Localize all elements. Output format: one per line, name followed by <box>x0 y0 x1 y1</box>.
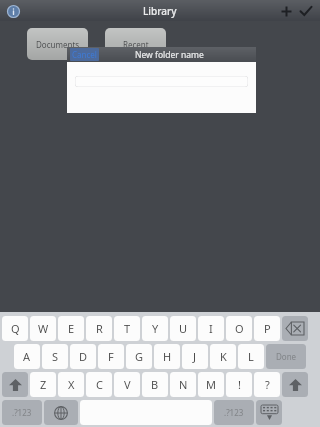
staticText: X <box>68 377 75 392</box>
button[interactable]: G <box>126 344 152 369</box>
staticText: New folder name <box>135 49 204 61</box>
button[interactable]: O <box>226 316 252 341</box>
staticText: S <box>52 349 59 364</box>
staticText: R <box>96 321 103 336</box>
button[interactable]: L <box>238 344 264 369</box>
staticText: W <box>38 321 49 336</box>
button[interactable]: Z <box>30 372 56 397</box>
button[interactable] <box>75 76 248 87</box>
button[interactable]: F <box>98 344 124 369</box>
staticText: F <box>108 349 114 364</box>
staticText: Cancel <box>72 49 97 60</box>
button[interactable]: V <box>114 372 140 397</box>
staticText: L <box>248 349 254 364</box>
staticText: Y <box>152 321 159 336</box>
button[interactable]: Documents <box>27 28 88 60</box>
button[interactable]: P <box>254 316 280 341</box>
staticText: N <box>179 377 188 392</box>
button[interactable]: T <box>114 316 140 341</box>
staticText: O <box>235 321 244 336</box>
button[interactable]: J <box>182 344 208 369</box>
staticText: V <box>124 377 131 392</box>
staticText: M <box>206 377 216 392</box>
staticText: P <box>264 321 271 336</box>
button[interactable]: .?123 <box>2 400 42 425</box>
staticText: Documents <box>36 39 80 50</box>
button[interactable]: Change keyboard <box>44 400 78 425</box>
button[interactable]: Info <box>5 3 21 19</box>
staticText: Library <box>143 4 177 18</box>
button[interactable]: Shift <box>2 372 28 397</box>
button[interactable]: Done <box>296 1 316 21</box>
button[interactable]: C <box>86 372 112 397</box>
staticText: Z <box>40 377 47 392</box>
staticText: G <box>135 349 144 364</box>
staticText: I <box>209 321 213 336</box>
staticText: K <box>220 349 227 364</box>
staticText: A <box>23 349 31 364</box>
staticText: Recent <box>123 39 149 50</box>
staticText: T <box>124 321 131 336</box>
button[interactable]: R <box>86 316 112 341</box>
button[interactable]: .?123 <box>214 400 254 425</box>
button[interactable]: Backspace <box>282 316 308 341</box>
staticText: Q <box>11 321 20 336</box>
button[interactable]: S <box>42 344 68 369</box>
staticText: ? <box>265 377 270 392</box>
button[interactable]: A <box>14 344 40 369</box>
button[interactable]: K <box>210 344 236 369</box>
button[interactable]: Q <box>2 316 28 341</box>
button[interactable]: H <box>154 344 180 369</box>
staticText: Done <box>276 351 297 362</box>
staticText: .?123 <box>12 407 32 418</box>
staticText: H <box>163 349 172 364</box>
staticText: ! <box>238 377 241 392</box>
button[interactable]: X <box>58 372 84 397</box>
button[interactable]: B <box>142 372 168 397</box>
staticText: J <box>193 349 197 364</box>
button[interactable]: D <box>70 344 96 369</box>
button[interactable]: W <box>30 316 56 341</box>
button[interactable]: Recent <box>105 28 166 60</box>
staticText: E <box>68 321 75 336</box>
button[interactable]: Hide keyboard <box>256 400 282 425</box>
staticText: C <box>96 377 103 392</box>
button[interactable]: I <box>198 316 224 341</box>
button[interactable]: Done <box>266 344 306 369</box>
button[interactable]: ! <box>226 372 252 397</box>
button[interactable]: M <box>198 372 224 397</box>
staticText: B <box>151 377 159 392</box>
staticText: D <box>79 349 88 364</box>
button[interactable]: Cancel <box>72 49 97 60</box>
button[interactable]: E <box>58 316 84 341</box>
staticText: .?123 <box>224 407 244 418</box>
staticText: U <box>179 321 188 336</box>
button[interactable]: ? <box>254 372 280 397</box>
button[interactable]: U <box>170 316 196 341</box>
button[interactable]: N <box>170 372 196 397</box>
button[interactable]: Add <box>276 1 296 21</box>
button[interactable]: Y <box>142 316 168 341</box>
button[interactable]: Shift <box>282 372 308 397</box>
